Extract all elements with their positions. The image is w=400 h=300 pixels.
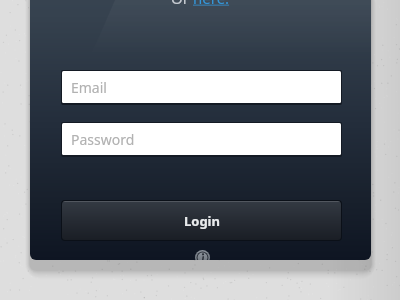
button[interactable]: Login <box>62 201 341 240</box>
button[interactable]: Information <box>193 248 211 260</box>
staticText: Or <box>171 0 193 8</box>
button[interactable]: Email <box>62 71 341 103</box>
button[interactable]: Password <box>62 123 341 155</box>
button[interactable]: here. <box>193 0 230 8</box>
staticText: Login <box>184 212 220 230</box>
staticText: here. <box>193 0 230 8</box>
staticText: Email <box>71 78 107 97</box>
staticText: Password <box>71 130 135 149</box>
